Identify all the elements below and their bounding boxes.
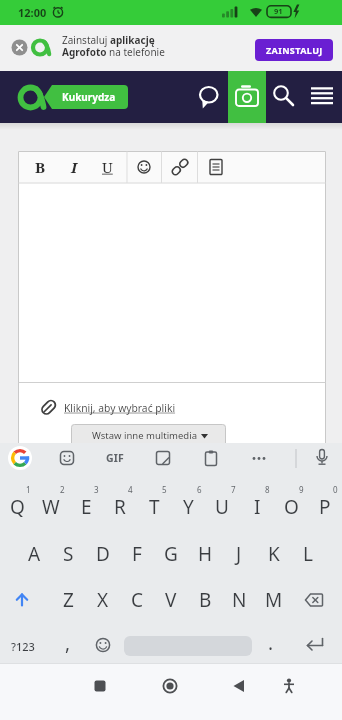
staticText: E [81, 494, 92, 520]
staticText: B [35, 157, 46, 177]
button[interactable]: W [34, 484, 68, 530]
staticText: ZAINSTALUJ [266, 44, 323, 56]
staticText: S [63, 541, 74, 567]
button[interactable]: O [274, 484, 308, 530]
staticText: O [284, 494, 299, 520]
staticText: Y [183, 494, 194, 520]
button[interactable] [295, 578, 337, 623]
button[interactable] [267, 664, 311, 708]
button[interactable] [58, 152, 90, 182]
button[interactable]: D [86, 531, 120, 577]
button[interactable]: N [222, 577, 256, 623]
button[interactable] [199, 152, 232, 182]
button[interactable] [149, 444, 177, 472]
staticText: N [232, 587, 247, 613]
button[interactable]: Y [171, 484, 205, 530]
button[interactable] [148, 664, 192, 708]
button[interactable] [4, 578, 42, 623]
button[interactable] [163, 152, 196, 182]
button[interactable]: L [291, 531, 325, 577]
staticText: 3 [94, 484, 99, 495]
staticText: GIF [106, 451, 125, 465]
button[interactable]: ZAINSTALUJ [255, 39, 333, 61]
staticText: R [114, 494, 126, 520]
button[interactable]: , [51, 620, 85, 666]
staticText: K [268, 541, 280, 567]
button[interactable]: M [257, 577, 291, 623]
staticText: H [198, 541, 213, 567]
button[interactable]: T [137, 484, 171, 530]
button[interactable] [92, 152, 124, 182]
button[interactable]: A [17, 531, 51, 577]
staticText: B [199, 587, 212, 613]
button[interactable]: U [205, 484, 239, 530]
button[interactable] [217, 664, 261, 708]
button[interactable] [228, 71, 266, 123]
button[interactable]: Kukurydza [44, 84, 128, 110]
button[interactable] [128, 152, 160, 182]
staticText: J [236, 541, 242, 567]
staticText: W [42, 494, 60, 520]
button[interactable]: K [257, 531, 291, 577]
button[interactable]: P [308, 484, 342, 530]
button[interactable]: Z [51, 577, 85, 623]
button[interactable]: F [120, 531, 154, 577]
staticText: Kliknij, aby wybrać pliki [64, 401, 176, 415]
staticText: U [102, 157, 113, 177]
button[interactable]: J [222, 531, 256, 577]
staticText: Wstaw inne multimedia [92, 429, 197, 442]
button[interactable]: E [69, 484, 103, 530]
button[interactable]: V [154, 577, 188, 623]
button[interactable]: H [188, 531, 222, 577]
staticText: Agrofoto na telefonie [62, 45, 165, 59]
button[interactable] [78, 664, 122, 708]
staticText: G [164, 541, 178, 567]
button[interactable] [308, 84, 336, 110]
button[interactable] [308, 444, 336, 472]
button[interactable]: GIF [101, 444, 129, 472]
button[interactable] [196, 83, 222, 111]
button[interactable] [36, 396, 196, 418]
staticText: , [65, 630, 71, 656]
button[interactable] [4, 624, 42, 664]
button[interactable]: Wstaw inne multimedia [71, 424, 226, 447]
staticText: 4 [128, 484, 133, 495]
button[interactable]: . [254, 620, 288, 666]
button[interactable]: C [120, 577, 154, 623]
staticText: ?123 [11, 639, 35, 654]
button[interactable] [53, 444, 81, 472]
button[interactable] [270, 82, 298, 110]
staticText: Kukurydza [62, 90, 116, 104]
staticText: 2 [60, 484, 65, 495]
staticText: C [131, 587, 144, 613]
button[interactable] [24, 152, 56, 182]
staticText: L [303, 541, 313, 567]
button[interactable] [197, 444, 225, 472]
button[interactable] [245, 444, 273, 472]
button[interactable]: X [86, 577, 120, 623]
button[interactable]: G [154, 531, 188, 577]
staticText: T [149, 494, 160, 520]
staticText: 12:00 [18, 5, 47, 20]
staticText: V [165, 587, 177, 613]
staticText: 9 [299, 484, 304, 495]
button[interactable] [296, 624, 336, 664]
staticText: 7 [231, 484, 236, 495]
button[interactable] [11, 39, 28, 56]
staticText: 6 [197, 484, 202, 495]
button[interactable]: B [188, 577, 222, 623]
staticText: 8 [265, 484, 270, 495]
staticText: Z [63, 587, 74, 613]
staticText: X [97, 587, 109, 613]
button[interactable]: S [51, 531, 85, 577]
button[interactable]: Q [0, 484, 34, 530]
button[interactable] [6, 444, 34, 472]
button[interactable]: R [103, 484, 137, 530]
button[interactable] [86, 624, 120, 664]
button[interactable]: I [240, 484, 274, 530]
staticText: D [96, 541, 110, 567]
staticText: F [132, 541, 142, 567]
staticText: M [265, 587, 283, 613]
staticText: 91 [274, 6, 283, 16]
